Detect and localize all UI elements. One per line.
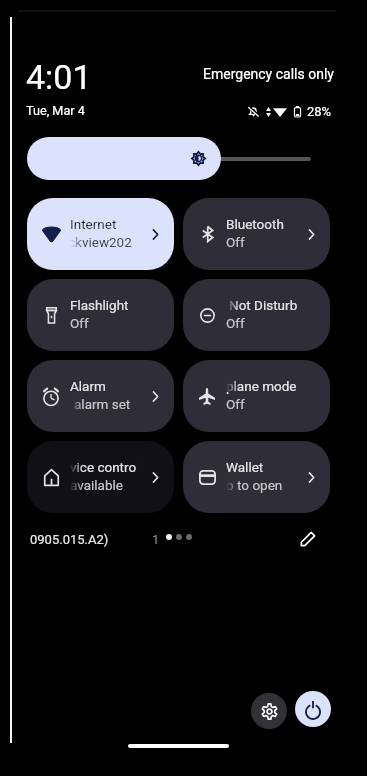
staticText: Off (226, 315, 245, 331)
button[interactable]: Internet (27, 198, 174, 270)
button[interactable]: Brightness (27, 137, 221, 180)
button[interactable]: Settings (251, 693, 287, 729)
staticText: ckview202 (70, 234, 132, 250)
staticText: 1 (152, 532, 160, 547)
staticText: Off (70, 315, 89, 331)
staticText: Alarm (70, 378, 106, 394)
button[interactable]: Wallet (183, 441, 330, 513)
staticText: Not Disturb (229, 297, 298, 313)
staticText: 28% (307, 104, 332, 119)
button[interactable]: vice contro (27, 441, 174, 513)
staticText: Wallet (226, 459, 264, 475)
button[interactable]: Flashlight (27, 279, 174, 351)
staticText: Off (226, 396, 245, 412)
staticText: Flashlight (70, 297, 129, 313)
button[interactable]: Not Disturb (183, 279, 330, 351)
staticText: 0905.015.A2) (30, 532, 109, 547)
staticText: Emergency calls only (203, 66, 334, 82)
staticText: Off (226, 234, 245, 250)
staticText: available (70, 477, 123, 493)
button[interactable]: Bluetooth (183, 198, 330, 270)
staticText: vice contro (70, 459, 137, 475)
staticText: Internet (70, 216, 117, 232)
staticText: o to open (226, 477, 283, 493)
button[interactable]: Edit tiles (292, 522, 324, 554)
button[interactable]: Alarm (27, 360, 174, 432)
staticText: Tue, Mar 4 (26, 103, 85, 118)
staticText: plane mode (226, 378, 297, 394)
staticText: Bluetooth (226, 216, 284, 232)
button[interactable]: plane mode (183, 360, 330, 432)
staticText: 4:01 (26, 57, 92, 97)
staticText: alarm set (74, 396, 131, 412)
button[interactable]: Power (295, 691, 331, 727)
